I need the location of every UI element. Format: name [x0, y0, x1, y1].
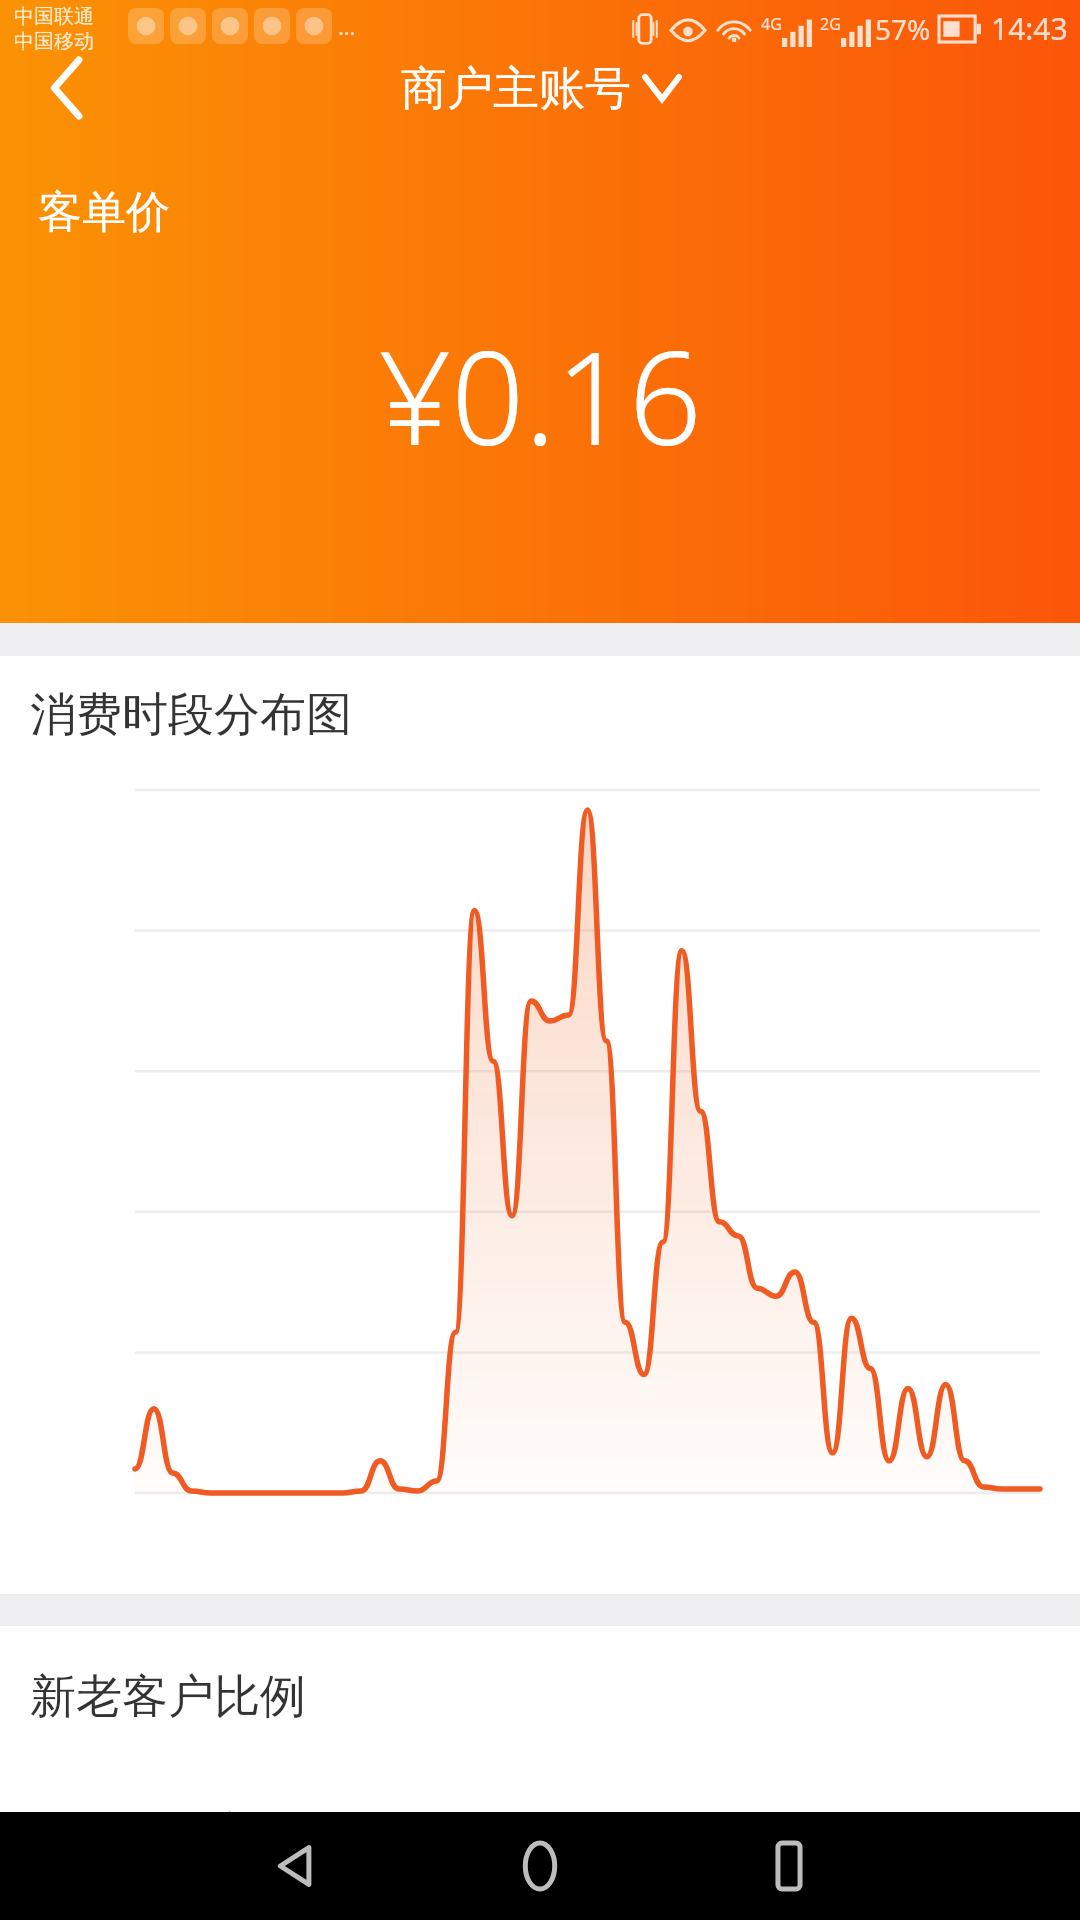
button[interactable]: Back	[28, 60, 108, 116]
staticText: 57%	[875, 10, 931, 48]
staticText: 中国移动	[14, 29, 94, 54]
staticText: 客单价	[38, 185, 170, 240]
staticText: 新老客户比例	[30, 1668, 306, 1726]
staticText: 消费时段分布图	[30, 686, 352, 744]
staticText: ¥0.16	[0, 308, 1080, 482]
button[interactable]: Back	[250, 1820, 342, 1912]
staticText: 老客	[190, 1808, 246, 1843]
button[interactable]: Home	[494, 1820, 586, 1912]
staticText: 2G	[820, 13, 841, 35]
button[interactable]: Recent apps	[743, 1820, 835, 1912]
staticText: 4G	[761, 13, 782, 35]
staticText: 14:43	[991, 8, 1068, 49]
staticText: 商户主账号	[401, 60, 631, 116]
staticText: 中国联通	[14, 4, 94, 29]
staticText: …	[338, 11, 356, 41]
button[interactable]: 商户主账号	[401, 60, 679, 116]
